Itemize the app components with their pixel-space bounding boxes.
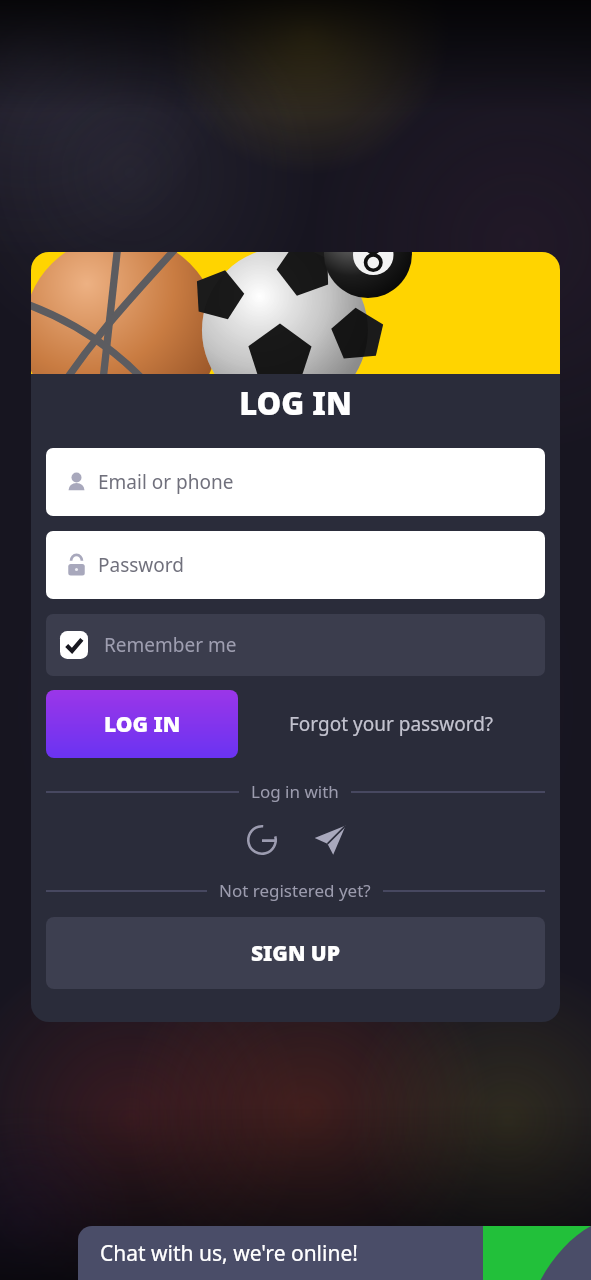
button[interactable]: Chat with us, we're online! xyxy=(78,1226,591,1280)
staticText: Log in with xyxy=(251,780,339,803)
staticText: LOG IN xyxy=(104,710,181,739)
staticText: Chat with us, we're online! xyxy=(100,1239,358,1268)
button[interactable]: Email or phone xyxy=(46,448,545,516)
staticText: LOG IN xyxy=(31,382,560,424)
staticText: Not registered yet? xyxy=(219,879,371,902)
button[interactable]: SIGN UP xyxy=(46,917,545,989)
button[interactable]: LOG IN xyxy=(46,690,238,758)
button[interactable]: Forgot your password? xyxy=(289,711,494,737)
button[interactable]: Password xyxy=(46,531,545,599)
staticText: Password xyxy=(98,552,184,578)
button[interactable]: Log in with Google xyxy=(239,817,285,863)
staticText: SIGN UP xyxy=(251,939,341,968)
button[interactable]: Remember me xyxy=(46,614,545,676)
staticText: Remember me xyxy=(104,632,237,658)
staticText: Email or phone xyxy=(98,469,234,495)
button[interactable]: Log in with Telegram xyxy=(307,817,353,863)
